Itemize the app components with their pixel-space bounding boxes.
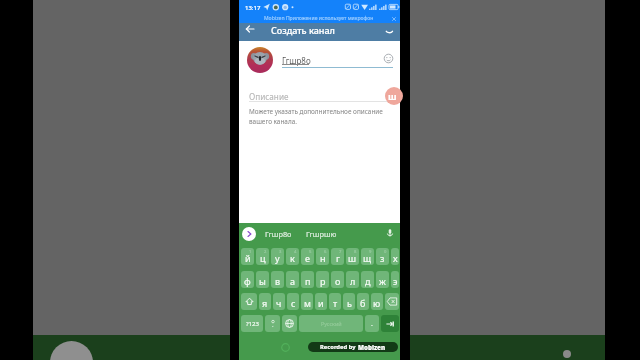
button[interactable]: Done [384,28,395,39]
staticText: 4 [294,249,297,255]
staticText: с [291,297,296,309]
staticText: е [305,252,310,264]
button[interactable]: ф [241,271,254,288]
button[interactable]: э [391,271,399,288]
staticText: Ггшр8о [265,229,292,239]
button[interactable]: Shift [241,293,257,310]
staticText: ш [348,252,357,264]
staticText: Mobizen [358,343,386,351]
staticText: ф [244,275,251,287]
button[interactable]: Dismiss [391,16,397,22]
button[interactable]: г [331,248,344,265]
button[interactable]: щ [361,248,374,265]
button[interactable]: д [361,271,374,288]
staticText: 3 [279,249,282,255]
button[interactable]: п [301,271,314,288]
staticText: Recorded by [320,343,358,351]
staticText: ц [260,252,266,264]
button[interactable]: у [271,248,284,265]
button[interactable]: а [286,271,299,288]
button[interactable]: Русский [299,315,363,332]
staticText: Описание [249,91,289,102]
staticText: к [290,252,295,264]
staticText: ю [373,297,381,309]
button[interactable]: м [301,293,313,310]
button[interactable]: Comma [265,315,280,332]
staticText: щ [363,252,372,264]
staticText: о [335,275,341,287]
staticText: 8 [354,249,357,255]
button[interactable]: ю [371,293,383,310]
button[interactable]: ?123 [241,315,263,332]
button[interactable]: Emoji [383,53,394,64]
button[interactable]: ш [346,248,359,265]
button[interactable]: ч [273,293,285,310]
other: Backspace [387,297,397,306]
staticText: Можете указать дополнительное описание в… [249,107,389,125]
button[interactable]: Set channel photo [247,47,273,73]
staticText: 6 [324,249,327,255]
staticText: ?123 [246,320,259,328]
button[interactable]: з [376,248,389,265]
staticText: ч [276,297,282,309]
staticText: х [393,252,398,264]
staticText: т [333,297,338,309]
button[interactable]: ь [343,293,355,310]
button[interactable]: я [259,293,271,310]
staticText: и [318,297,324,309]
button[interactable]: е [301,248,314,265]
staticText: л [350,275,356,287]
button[interactable]: н [316,248,329,265]
staticText: ь [347,297,352,309]
button[interactable]: с [287,293,299,310]
button[interactable]: л [346,271,359,288]
button[interactable]: . [365,315,379,332]
button[interactable]: Voice input [385,228,395,238]
staticText: 9 [369,249,372,255]
staticText: Русский [321,320,342,327]
staticText: Создать канал [271,24,335,36]
staticText: Ггшр8о [282,55,311,66]
button[interactable]: Backspace [385,293,399,310]
button[interactable]: Mobizen recorder [385,87,403,105]
button[interactable]: й [241,248,254,265]
staticText: Ггшршю [306,229,337,239]
button[interactable]: т [329,293,341,310]
button[interactable]: ы [256,271,269,288]
staticText: п [305,275,311,287]
button[interactable]: р [316,271,329,288]
button[interactable]: б [357,293,369,310]
staticText: ж [379,275,386,287]
other: Comma [269,320,277,328]
staticText: 7 [339,249,342,255]
staticText: э [393,275,398,287]
staticText: Mobizen Приложение использует микрофон [264,15,374,22]
button[interactable]: в [271,271,284,288]
button[interactable]: Back [245,24,255,34]
staticText: у [275,252,280,264]
button[interactable]: ж [376,271,389,288]
other: Enter [385,319,395,329]
staticText: р [320,275,326,287]
button[interactable]: о [331,271,344,288]
button[interactable]: к [286,248,299,265]
button[interactable]: Expand suggestions [242,227,256,241]
staticText: ы [259,275,266,287]
other: Change language [285,319,294,328]
button[interactable]: Enter [381,315,399,332]
button[interactable]: и [315,293,327,310]
staticText: ш [388,90,397,102]
button[interactable]: х [391,248,399,265]
staticText: б [360,297,366,309]
staticText: а [290,275,296,287]
staticText: з [380,252,385,264]
button[interactable]: Change language [282,315,297,332]
staticText: я [262,297,268,309]
button[interactable]: Home [281,343,290,352]
staticText: 1 [249,249,252,255]
button[interactable]: ц [256,248,269,265]
staticText: . [371,319,373,329]
staticText: м [304,297,311,309]
staticText: 0 [384,249,387,255]
staticText: 13:17 [245,4,261,12]
